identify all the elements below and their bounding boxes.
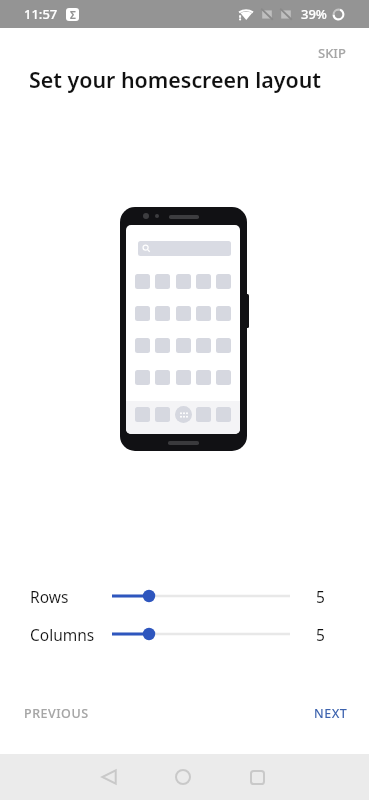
button[interactable]: SKIP — [303, 36, 362, 70]
staticText: Set your homescreen layout — [29, 65, 322, 94]
button[interactable] — [106, 585, 296, 607]
button[interactable]: Recent apps — [235, 755, 279, 799]
staticText: 5 — [316, 624, 325, 645]
button[interactable]: NEXT — [290, 697, 369, 730]
staticText: 5 — [316, 586, 325, 607]
staticText: 11:57 — [24, 5, 58, 23]
staticText: SKIP — [318, 44, 346, 62]
staticText: 39% — [301, 5, 327, 23]
staticText: Rows — [30, 586, 69, 607]
button[interactable]: Home — [161, 755, 205, 799]
button[interactable] — [106, 623, 296, 645]
staticText: NEXT — [314, 705, 348, 722]
staticText: Columns — [30, 624, 95, 645]
staticText: Σ — [70, 8, 76, 21]
staticText: PREVIOUS — [24, 705, 89, 722]
button[interactable]: PREVIOUS — [0, 697, 113, 730]
button[interactable]: Back — [87, 755, 131, 799]
